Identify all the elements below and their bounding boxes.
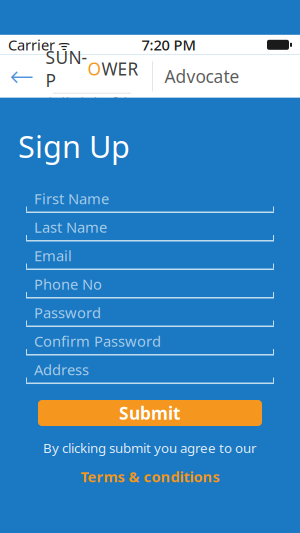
staticText: Last Name bbox=[34, 217, 107, 237]
button[interactable]: Submit bbox=[38, 400, 262, 426]
staticText: Email bbox=[34, 246, 72, 265]
staticText: Phone No bbox=[34, 274, 102, 294]
staticText: Carrier bbox=[8, 35, 55, 55]
button[interactable]: Email bbox=[26, 247, 274, 270]
staticText: ᯤ bbox=[55, 36, 70, 54]
staticText: First Name bbox=[34, 189, 109, 208]
button[interactable]: First Name bbox=[26, 190, 274, 213]
button[interactable]: Address bbox=[26, 361, 274, 384]
button[interactable]: Back bbox=[0, 54, 44, 98]
staticText: By clicking submit you agree to our bbox=[43, 439, 257, 457]
button[interactable]: Terms & conditions bbox=[74, 463, 225, 490]
staticText: by Hooked on Solar bbox=[49, 94, 135, 107]
button[interactable]: Password bbox=[26, 304, 274, 327]
staticText: 7:20 PM bbox=[141, 35, 195, 55]
staticText: Confirm Password bbox=[34, 331, 161, 351]
staticText: ← bbox=[9, 60, 34, 93]
staticText: O bbox=[87, 57, 101, 80]
button[interactable]: Confirm Password bbox=[26, 333, 274, 355]
staticText: SUNP bbox=[45, 46, 87, 92]
staticText: Terms & conditions bbox=[80, 467, 219, 486]
staticText: Submit bbox=[119, 401, 181, 424]
button[interactable]: Last Name bbox=[26, 219, 274, 241]
button[interactable]: Phone No bbox=[26, 276, 274, 298]
staticText: Advocate bbox=[164, 65, 239, 88]
staticText: Password bbox=[34, 303, 101, 322]
staticText: Sign Up bbox=[18, 126, 130, 166]
staticText: Address bbox=[34, 360, 89, 379]
staticText: WER bbox=[101, 57, 138, 80]
